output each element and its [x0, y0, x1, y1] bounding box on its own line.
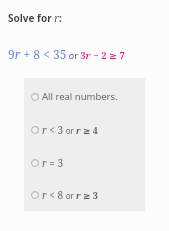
staticText: Solve for r: — [8, 11, 62, 25]
button[interactable]: r = 3 — [24, 146, 145, 179]
staticText: r < 8 or r ≥ 3 — [42, 188, 98, 202]
button[interactable]: r < 8 or r ≥ 3 — [24, 179, 145, 211]
button[interactable]: All real numbers. — [24, 80, 145, 113]
staticText: r = 3 — [42, 156, 64, 170]
staticText: All real numbers. — [42, 90, 118, 103]
button[interactable]: r < 3 or r ≥ 4 — [24, 113, 145, 146]
staticText: r < 3 or r ≥ 4 — [42, 123, 98, 137]
staticText: 9r + 8 < 35 or 3r − 2 ≥ 7 — [8, 46, 125, 62]
